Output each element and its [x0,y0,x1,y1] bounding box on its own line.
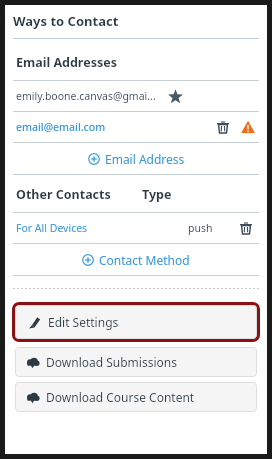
staticText: Type [142,186,172,203]
staticText: Other Contacts [16,186,111,203]
button[interactable]: Download Course Content [15,382,257,412]
staticText: push [188,221,213,235]
staticText: Email Address [105,151,185,167]
staticText: emily.boone.canvas@gmai... [16,89,156,103]
staticText: Download Course Content [46,389,195,405]
button[interactable]: Email Address [5,143,267,174]
staticText: Email Addresses [16,54,117,71]
button[interactable]: For All Devices [16,221,88,235]
button[interactable]: Default email address [166,87,184,105]
button[interactable]: Delete email address [214,118,232,136]
staticText: Edit Settings [48,314,119,330]
button[interactable]: email@email.com [16,120,106,134]
staticText: Ways to Contact [13,12,119,30]
button[interactable]: Download Submissions [15,347,257,377]
staticText: Contact Method [99,252,190,268]
button[interactable]: emily.boone.canvas@gmai... [5,81,267,111]
button[interactable]: Edit Settings [15,305,257,339]
button[interactable]: Contact Method [5,244,267,275]
other: Unconfirmed email warning [239,118,257,136]
button[interactable]: Delete contact method [237,219,255,237]
staticText: Download Submissions [46,354,177,370]
